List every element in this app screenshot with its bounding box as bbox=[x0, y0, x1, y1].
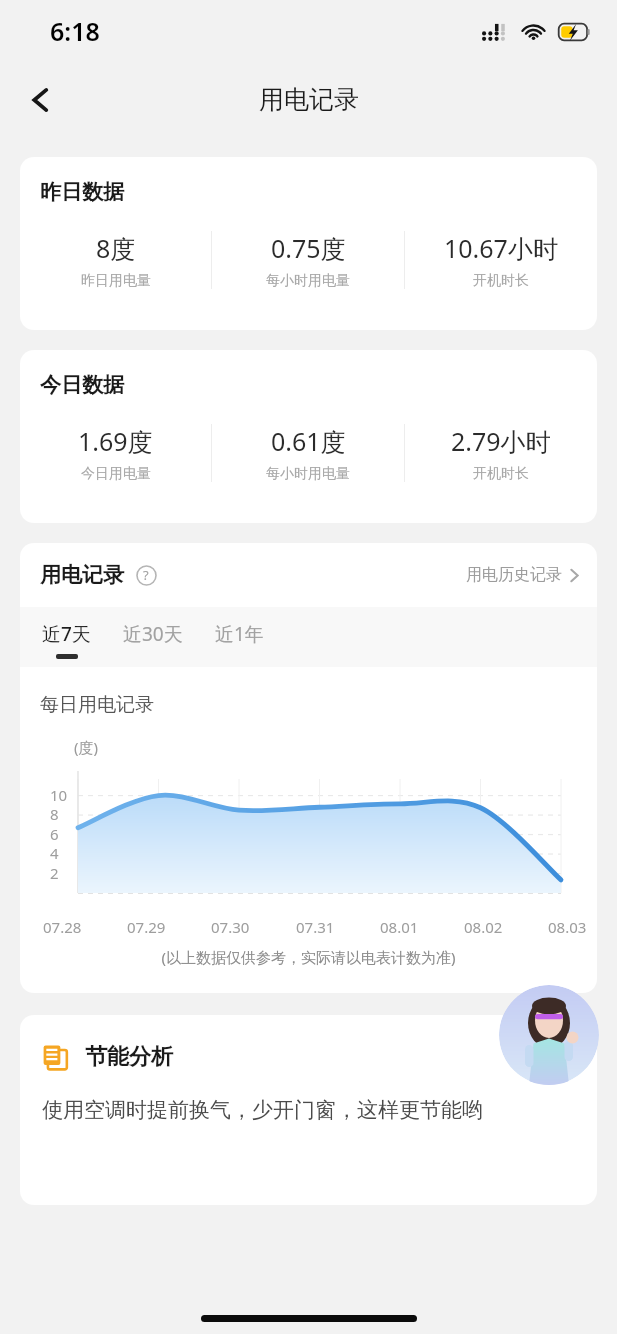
staticText: ? bbox=[143, 566, 149, 584]
button[interactable]: Back bbox=[14, 73, 68, 127]
staticText: 2.79小时 bbox=[451, 424, 551, 458]
staticText: 近7天 bbox=[42, 621, 91, 647]
staticText: 使用空调时提前换气，少开门窗，这样更节能哟 bbox=[42, 1097, 483, 1123]
staticText: 08.03 bbox=[548, 917, 587, 937]
staticText: 0.75度 bbox=[271, 231, 346, 265]
staticText: 08.01 bbox=[380, 917, 419, 937]
staticText: 今日用电量 bbox=[81, 465, 151, 483]
staticText: 6 bbox=[50, 824, 59, 844]
staticText: 07.29 bbox=[127, 917, 166, 937]
staticText: 10.67小时 bbox=[444, 231, 558, 265]
staticText: 用电记录 bbox=[40, 562, 124, 588]
staticText: 用电记录 bbox=[259, 84, 359, 115]
button[interactable]: 用电历史记录 bbox=[466, 565, 579, 585]
staticText: 近1年 bbox=[215, 621, 264, 647]
staticText: 07.31 bbox=[296, 917, 335, 937]
staticText: 开机时长 bbox=[473, 272, 529, 290]
staticText: 8度 bbox=[96, 231, 136, 265]
staticText: 昨日用电量 bbox=[81, 272, 151, 290]
staticText: 节能分析 bbox=[85, 1043, 173, 1071]
staticText: 用电历史记录 bbox=[466, 565, 562, 585]
staticText: 08.02 bbox=[464, 917, 503, 937]
staticText: 6:18 bbox=[50, 14, 100, 48]
staticText: 10 bbox=[50, 785, 68, 805]
button[interactable]: 近30天 bbox=[121, 621, 185, 659]
staticText: 每日用电记录 bbox=[40, 693, 154, 717]
button[interactable]: 近1年 bbox=[213, 621, 266, 659]
button[interactable]: Assistant avatar bbox=[499, 985, 599, 1085]
staticText: 07.28 bbox=[43, 917, 82, 937]
staticText: 4 bbox=[50, 843, 59, 863]
staticText: 每小时用电量 bbox=[266, 465, 350, 483]
staticText: 2 bbox=[50, 863, 59, 883]
staticText: 开机时长 bbox=[473, 465, 529, 483]
staticText: (度) bbox=[74, 737, 99, 757]
staticText: 1.69度 bbox=[78, 424, 153, 458]
staticText: (以上数据仅供参考，实际请以电表计数为准) bbox=[20, 947, 597, 967]
staticText: 今日数据 bbox=[40, 372, 124, 398]
button[interactable]: Help bbox=[134, 563, 158, 587]
staticText: 8 bbox=[50, 804, 59, 824]
staticText: 每小时用电量 bbox=[266, 272, 350, 290]
staticText: 昨日数据 bbox=[40, 179, 124, 205]
staticText: 07.30 bbox=[211, 917, 250, 937]
staticText: 0.61度 bbox=[271, 424, 346, 458]
staticText: 近30天 bbox=[123, 621, 183, 647]
button[interactable]: 近7天 bbox=[40, 621, 93, 659]
